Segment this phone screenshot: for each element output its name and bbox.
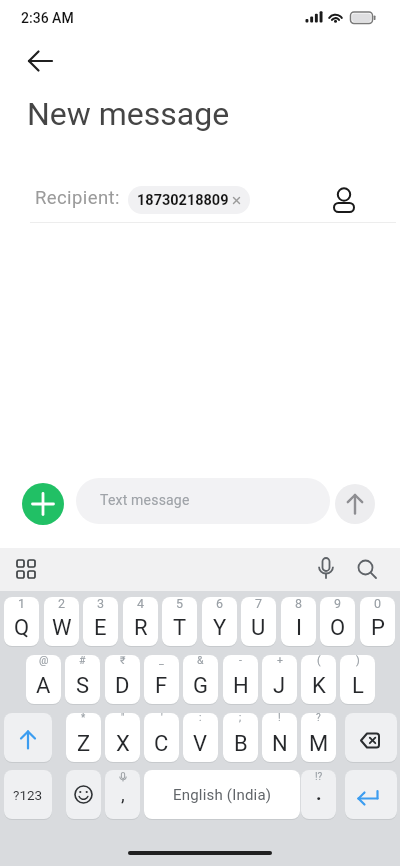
staticText: _	[159, 655, 164, 666]
staticText: X	[116, 731, 130, 757]
staticText: 18730218809	[137, 192, 229, 209]
staticText: P	[371, 615, 385, 641]
staticText: 6	[216, 597, 224, 611]
staticText: ;	[239, 713, 242, 724]
staticText: 0	[374, 597, 382, 611]
staticText: S	[76, 673, 90, 699]
staticText: W	[52, 615, 72, 641]
button[interactable]: 9	[320, 597, 355, 646]
staticText: Recipient:	[35, 187, 120, 209]
button[interactable]: )	[340, 655, 375, 704]
button[interactable]: !	[262, 713, 297, 762]
staticText: 3	[97, 597, 105, 611]
staticText: D	[115, 673, 130, 699]
button[interactable]: :	[183, 713, 218, 762]
staticText: M	[309, 731, 329, 757]
button[interactable]: +	[262, 655, 297, 704]
staticText: "	[121, 713, 125, 724]
staticText: ,	[121, 783, 125, 805]
staticText: A	[36, 673, 51, 699]
staticText: 2:36 AM	[21, 10, 74, 26]
button[interactable]	[349, 552, 385, 588]
staticText: .	[316, 782, 322, 804]
staticText: V	[193, 731, 208, 757]
staticText: ?	[316, 713, 321, 724]
button[interactable]: ,	[105, 770, 140, 819]
button[interactable]: 6	[202, 597, 237, 646]
button[interactable]: !?	[301, 770, 336, 819]
staticText: I	[296, 615, 302, 641]
button[interactable]	[308, 551, 344, 587]
button[interactable]: 7	[241, 597, 276, 646]
staticText: 2	[58, 597, 66, 611]
button[interactable]: *	[66, 713, 101, 762]
staticText: R	[134, 615, 148, 641]
button[interactable]: 2	[44, 597, 79, 646]
staticText: F	[155, 673, 168, 699]
staticText: Q	[14, 615, 30, 641]
button[interactable]	[22, 43, 60, 79]
staticText: E	[94, 615, 107, 641]
button[interactable]: -	[223, 655, 258, 704]
button[interactable]	[328, 182, 364, 218]
button[interactable]	[22, 483, 64, 525]
staticText: L	[352, 673, 364, 699]
staticText: N	[272, 731, 288, 757]
staticText: !?	[315, 771, 323, 783]
staticText: &	[197, 655, 204, 666]
staticText: K	[312, 673, 326, 699]
button[interactable]: 0	[360, 597, 395, 646]
staticText: B	[234, 731, 248, 757]
button[interactable]: 3	[83, 597, 118, 646]
button[interactable]: '	[144, 713, 179, 762]
button[interactable]: 18730218809	[128, 186, 250, 214]
staticText: Y	[213, 615, 227, 641]
staticText: #	[79, 655, 86, 666]
staticText: +	[277, 655, 283, 666]
button[interactable]	[345, 713, 397, 762]
staticText: 9	[334, 597, 342, 611]
button[interactable]: #	[65, 655, 100, 704]
staticText: T	[173, 615, 187, 641]
button[interactable]: (	[301, 655, 336, 704]
staticText: 8	[295, 597, 303, 611]
staticText: 1	[18, 597, 26, 611]
button[interactable]	[8, 551, 44, 587]
button[interactable]: ;	[223, 713, 258, 762]
staticText: C	[154, 731, 169, 757]
staticText: ₹	[120, 655, 126, 666]
staticText: J	[273, 673, 286, 699]
staticText: -	[239, 655, 242, 666]
staticText: )	[356, 655, 360, 666]
button[interactable]: 1	[4, 597, 39, 646]
button[interactable]	[4, 713, 52, 762]
staticText: 5	[176, 597, 184, 611]
button[interactable]: ?123	[4, 770, 52, 819]
button[interactable]	[66, 770, 101, 819]
staticText: '	[161, 713, 163, 724]
staticText: :	[199, 713, 202, 724]
button[interactable]: English (India)	[144, 770, 300, 819]
staticText: Z	[77, 731, 91, 757]
button[interactable]: 5	[162, 597, 197, 646]
button[interactable]: 8	[281, 597, 316, 646]
button[interactable]: _	[144, 655, 179, 704]
button[interactable]: 4	[123, 597, 158, 646]
staticText: O	[330, 615, 346, 641]
button[interactable]: Text message	[76, 478, 330, 524]
staticText: ?123	[13, 787, 43, 803]
button[interactable]	[345, 770, 397, 819]
button[interactable]: ?	[301, 713, 336, 762]
staticText: Text message	[100, 492, 190, 508]
staticText: 7	[255, 597, 263, 611]
staticText: 4	[137, 597, 145, 611]
button[interactable]: &	[183, 655, 218, 704]
staticText: U	[251, 615, 266, 641]
button[interactable]: ₹	[105, 655, 140, 704]
button[interactable]	[335, 484, 375, 524]
staticText: !	[278, 713, 281, 724]
button[interactable]: @	[26, 655, 61, 704]
staticText: *	[81, 713, 86, 724]
staticText: New message	[27, 95, 230, 133]
button[interactable]: "	[105, 713, 140, 762]
